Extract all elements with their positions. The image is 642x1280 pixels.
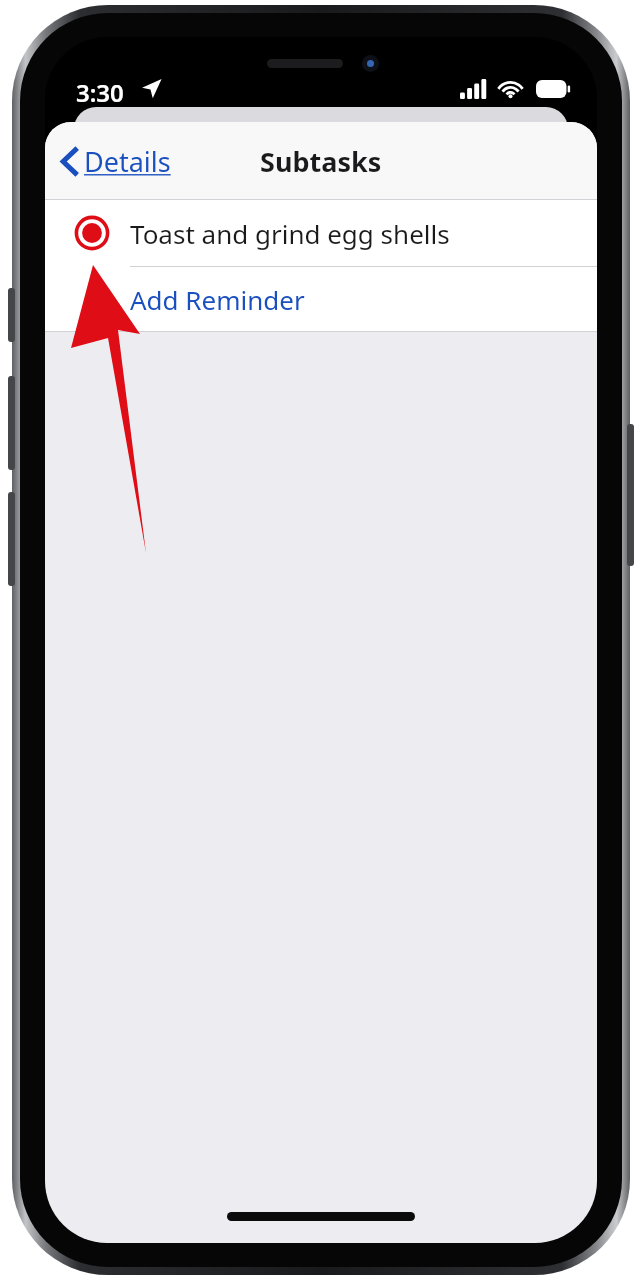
staticText: 3:30 — [76, 76, 124, 109]
staticText: Details — [84, 143, 171, 180]
staticText: Subtasks — [260, 143, 382, 180]
button[interactable]: Completed — [45, 200, 597, 266]
button[interactable]: Add Reminder — [45, 267, 597, 331]
button[interactable]: Back to Details — [57, 135, 175, 188]
staticText: Toast and grind egg shells — [130, 216, 450, 251]
staticText: Add Reminder — [130, 282, 305, 317]
other: Completed — [74, 215, 110, 251]
